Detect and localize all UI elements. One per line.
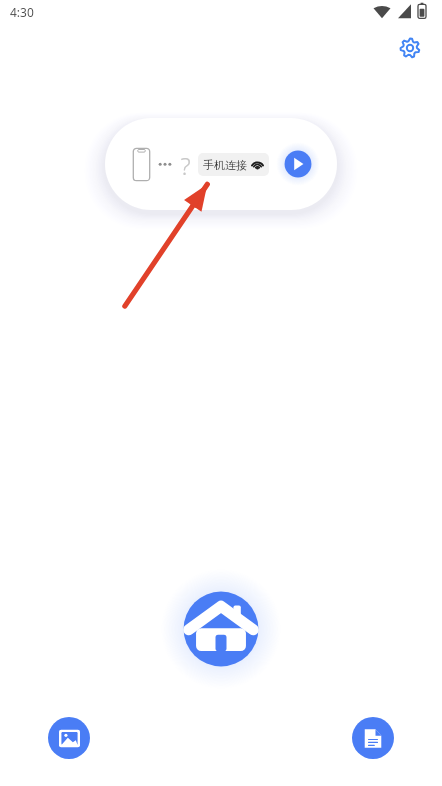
staticText: ?: [180, 149, 191, 179]
button[interactable]: Documents: [352, 717, 394, 759]
staticText: 手机连接: [203, 158, 247, 172]
button[interactable]: Play: [277, 143, 319, 185]
button[interactable]: Home: [161, 569, 281, 689]
button[interactable]: Settings: [391, 29, 429, 67]
button[interactable]: Gallery: [48, 717, 90, 759]
staticText: 4:30: [10, 4, 34, 20]
button[interactable]: ?: [105, 118, 337, 210]
